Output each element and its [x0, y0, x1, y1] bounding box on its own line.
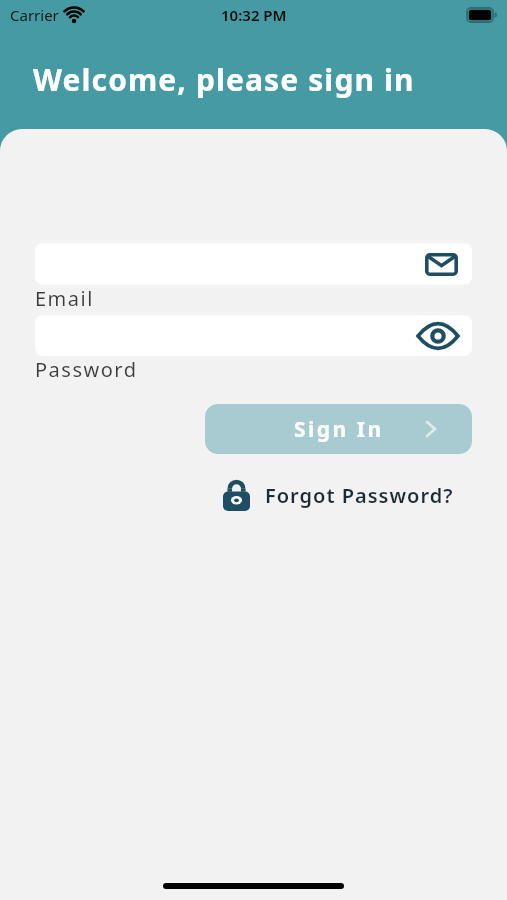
- button[interactable]: [35, 243, 472, 285]
- staticText: 10:32 PM: [221, 5, 287, 25]
- staticText: Password: [35, 356, 138, 383]
- staticText: Email: [35, 285, 94, 312]
- button[interactable]: Sign In: [205, 404, 472, 454]
- staticText: Welcome, please sign in: [33, 59, 415, 100]
- button[interactable]: [35, 315, 472, 356]
- button[interactable]: Forgot Password?: [223, 480, 454, 511]
- staticText: Sign In: [294, 415, 384, 444]
- staticText: Forgot Password?: [265, 482, 454, 509]
- staticText: Carrier: [10, 5, 59, 25]
